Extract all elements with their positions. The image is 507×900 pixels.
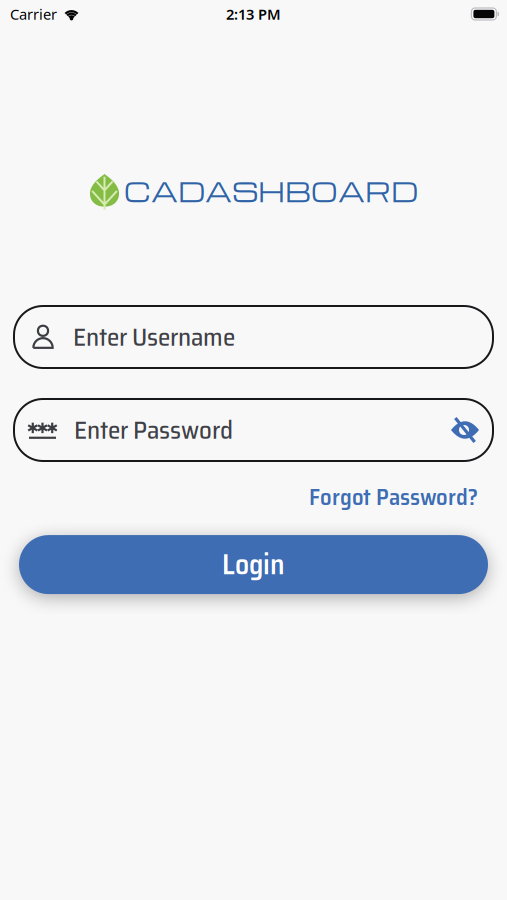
button[interactable]: Enter Username: [0, 306, 507, 368]
staticText: Login: [222, 543, 285, 587]
staticText: Enter Password: [74, 410, 233, 450]
button[interactable]: Forgot Password?: [309, 479, 478, 515]
button[interactable]: Show password: [451, 418, 493, 442]
staticText: CADASHBOARD: [124, 173, 418, 209]
staticText: Enter Username: [73, 317, 235, 357]
button[interactable]: Enter Password: [0, 399, 507, 461]
staticText: 2:13 PM: [226, 4, 281, 24]
staticText: Carrier: [10, 4, 57, 24]
button[interactable]: Login: [0, 535, 507, 594]
staticText: Forgot Password?: [309, 479, 478, 515]
